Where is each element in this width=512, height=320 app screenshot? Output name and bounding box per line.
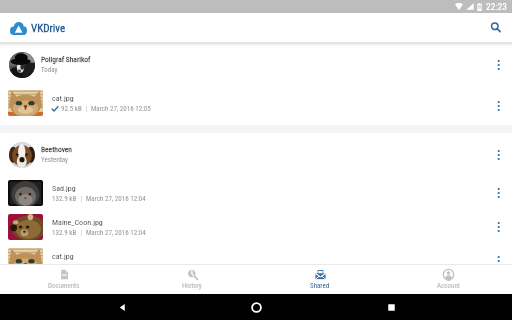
staticText: 132.9 kB (52, 195, 77, 203)
button[interactable]: More options (486, 43, 512, 86)
button[interactable]: Back (109, 294, 135, 320)
staticText: Account (437, 282, 460, 290)
button[interactable]: Shared (256, 264, 384, 294)
staticText: Beethoven (41, 145, 72, 154)
button[interactable]: Search (479, 13, 512, 43)
button[interactable]: Maine_Coon.jpg (0, 210, 512, 244)
button[interactable]: More options (486, 210, 512, 244)
staticText: Shared (310, 282, 330, 290)
button[interactable]: Recents (378, 294, 404, 320)
staticText: VKDrive (31, 22, 66, 35)
button[interactable]: More options (486, 176, 512, 210)
staticText: History (182, 282, 202, 290)
staticText: 22:23 (486, 1, 507, 12)
button[interactable]: Account (384, 264, 512, 294)
staticText: Maine_Coon.jpg (52, 218, 103, 227)
button[interactable]: Home (243, 294, 269, 320)
staticText: March 27, 2016 12:04 (86, 229, 146, 237)
button[interactable]: History (128, 264, 256, 294)
staticText: 92.5 kB (61, 105, 82, 113)
staticText: Yesterday (41, 156, 69, 164)
staticText: cat.jpg (52, 94, 74, 103)
button[interactable]: Poligraf Sharikof (0, 43, 512, 86)
button[interactable]: Sad.jpg (0, 176, 512, 210)
staticText: Documents (48, 282, 80, 290)
staticText: March 27, 2016 12:04 (86, 195, 146, 203)
staticText: Today (41, 66, 58, 74)
button[interactable]: Documents (0, 264, 128, 294)
staticText: Sad.jpg (52, 184, 76, 193)
staticText: 132.9 kB (52, 229, 77, 237)
button[interactable]: More options (486, 244, 512, 264)
button[interactable]: cat.jpg (0, 86, 512, 125)
staticText: cat.jpg (52, 252, 74, 261)
staticText: Poligraf Sharikof (41, 55, 91, 64)
button[interactable]: More options (486, 133, 512, 176)
staticText: March 27, 2016 12:05 (91, 105, 151, 113)
button[interactable]: More options (486, 86, 512, 125)
button[interactable]: Beethoven (0, 133, 512, 176)
button[interactable]: cat.jpg (0, 244, 512, 264)
